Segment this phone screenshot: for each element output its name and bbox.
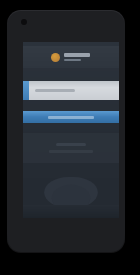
button[interactable]: App logo (23, 46, 119, 68)
button[interactable] (23, 111, 119, 123)
button[interactable] (23, 133, 119, 163)
button[interactable] (23, 171, 119, 205)
other: App logo (51, 53, 60, 62)
button[interactable] (23, 81, 119, 100)
